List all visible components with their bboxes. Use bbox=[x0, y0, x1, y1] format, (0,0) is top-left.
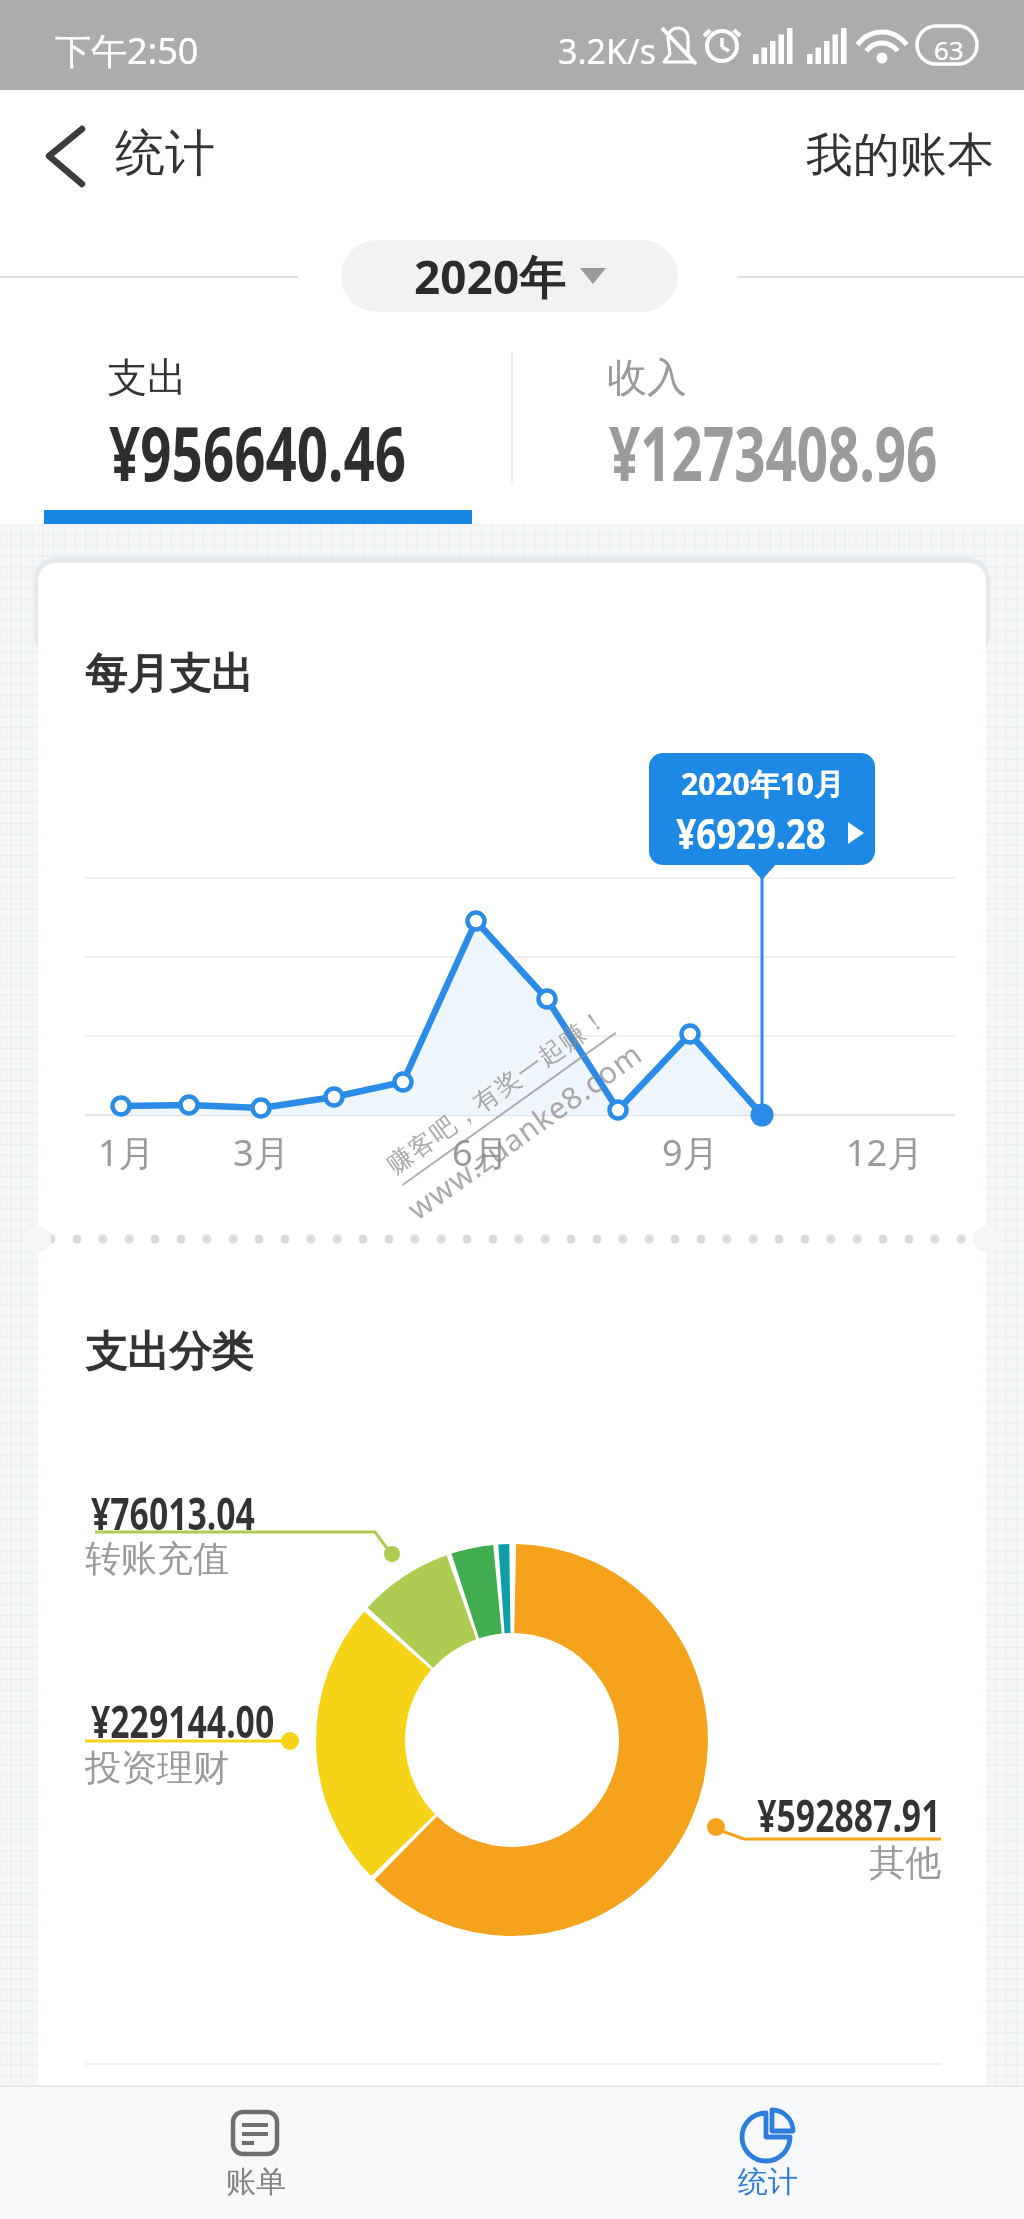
staticText: 我的账本 bbox=[806, 126, 994, 185]
staticText: 其他 bbox=[869, 1840, 941, 1885]
staticText: www.zuanke8.com bbox=[399, 1032, 650, 1228]
button[interactable]: 2020年 bbox=[341, 240, 678, 312]
staticText: 转账充值 bbox=[85, 1536, 229, 1581]
staticText: 账单 bbox=[226, 2163, 286, 2201]
staticText: ¥76013.04 bbox=[91, 1482, 255, 1543]
staticText: 12月 bbox=[846, 1128, 924, 1177]
staticText: 统计 bbox=[115, 122, 215, 185]
staticText: ¥229144.00 bbox=[91, 1690, 275, 1751]
staticText: 每月支出 bbox=[85, 648, 253, 701]
staticText: 1月 bbox=[98, 1128, 155, 1177]
staticText: ¥1273408.96 bbox=[609, 400, 938, 504]
button[interactable]: 我的账本 bbox=[790, 115, 1010, 195]
staticText: ¥6929.28 bbox=[676, 804, 826, 861]
staticText: 6月 bbox=[452, 1128, 509, 1177]
staticText: 投资理财 bbox=[85, 1745, 229, 1790]
staticText: 3月 bbox=[233, 1128, 290, 1177]
staticText: 赚客吧，有奖一起赚！ bbox=[380, 1002, 614, 1181]
button[interactable]: 账单 bbox=[156, 2085, 356, 2219]
button[interactable]: 统计 bbox=[668, 2085, 868, 2219]
staticText: ¥956640.46 bbox=[109, 400, 406, 504]
staticText: 支出分类 bbox=[85, 1326, 253, 1379]
staticText: 下午2:50 bbox=[55, 26, 199, 75]
staticText: 3.2K/s bbox=[558, 28, 656, 74]
button[interactable] bbox=[0, 340, 511, 524]
button[interactable] bbox=[513, 340, 1024, 524]
button[interactable]: 2020年10月 bbox=[649, 753, 875, 865]
staticText: 63 bbox=[934, 32, 964, 67]
staticText: 支出 bbox=[107, 352, 187, 402]
staticText: 统计 bbox=[738, 2163, 798, 2201]
button[interactable] bbox=[20, 110, 110, 205]
staticText: 9月 bbox=[662, 1128, 719, 1177]
staticText: 收入 bbox=[607, 352, 687, 402]
staticText: 2020年10月 bbox=[681, 763, 844, 804]
staticText: 2020年 bbox=[414, 245, 566, 308]
staticText: ¥592887.91 bbox=[757, 1784, 941, 1845]
